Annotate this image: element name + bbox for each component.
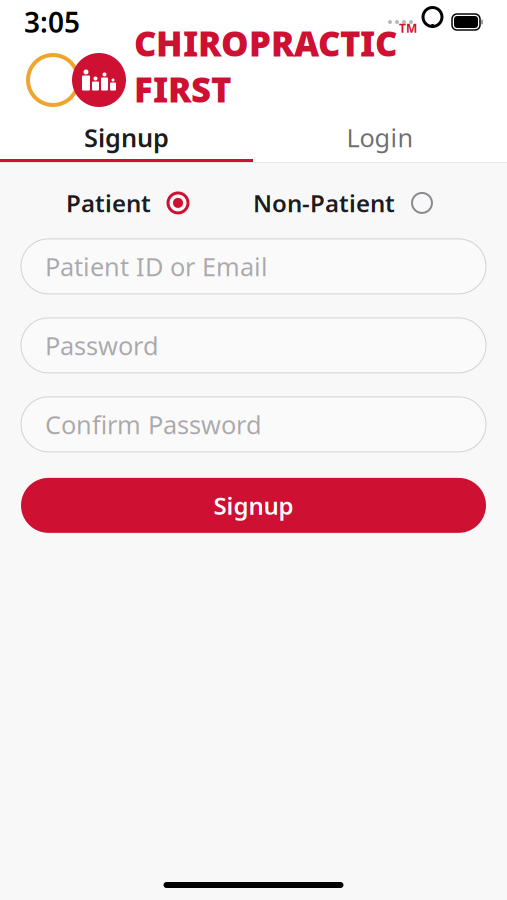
button[interactable]: Patient: [60, 181, 195, 225]
staticText: Patient ID or Email: [45, 250, 268, 283]
button[interactable]: Signup: [0, 116, 253, 162]
button[interactable]: Confirm Password: [21, 397, 486, 452]
button[interactable]: Non-Patient: [247, 181, 439, 225]
staticText: Login: [346, 121, 413, 154]
staticText: Signup: [213, 489, 293, 521]
staticText: Confirm Password: [45, 408, 262, 441]
staticText: Password: [45, 329, 159, 362]
staticText: Non-Patient: [253, 187, 395, 219]
button[interactable]: Password: [21, 318, 486, 373]
button[interactable]: Signup: [21, 478, 486, 533]
staticText: TM: [399, 20, 417, 36]
staticText: Signup: [84, 121, 169, 154]
staticText: 3:05: [24, 3, 80, 41]
button[interactable]: Login: [253, 116, 507, 162]
staticText: The Spine & Nerve Clinic: [134, 115, 361, 140]
staticText: CHIROPRACTIC FIRST: [134, 20, 397, 112]
button[interactable]: Patient ID or Email: [21, 239, 486, 294]
staticText: Patient: [66, 187, 151, 219]
